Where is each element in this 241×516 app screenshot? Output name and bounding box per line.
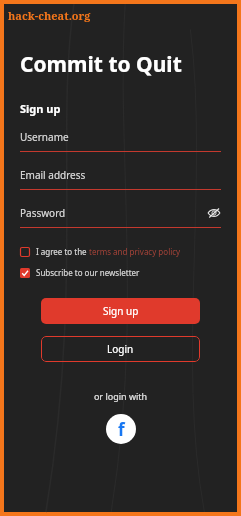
staticText: Username (20, 130, 69, 144)
button[interactable]: Login with Facebook (106, 414, 136, 444)
staticText: Sign up (103, 304, 139, 318)
staticText: Password (20, 206, 66, 220)
button[interactable]: Login (41, 336, 200, 362)
button[interactable]: Email address (20, 168, 221, 190)
staticText: Login (107, 342, 134, 356)
staticText: terms and privacy policy (89, 246, 181, 257)
button[interactable]: Sign up (41, 298, 200, 324)
staticText: Subscribe to our newsletter (36, 267, 140, 278)
staticText: Email address (20, 168, 86, 182)
button[interactable]: Password (20, 206, 221, 228)
button[interactable]: Username (20, 130, 221, 152)
button[interactable]: Show password (207, 206, 221, 220)
staticText: I agree to the (36, 246, 89, 257)
staticText: f (118, 418, 125, 441)
button[interactable]: I agree to the (20, 244, 181, 259)
staticText: or login with (4, 390, 237, 402)
staticText: hack-cheat.org (8, 8, 91, 23)
staticText: Commit to Quit (20, 50, 182, 79)
button[interactable]: Subscribe to our newsletter (20, 265, 140, 280)
staticText: Sign up (20, 101, 61, 116)
